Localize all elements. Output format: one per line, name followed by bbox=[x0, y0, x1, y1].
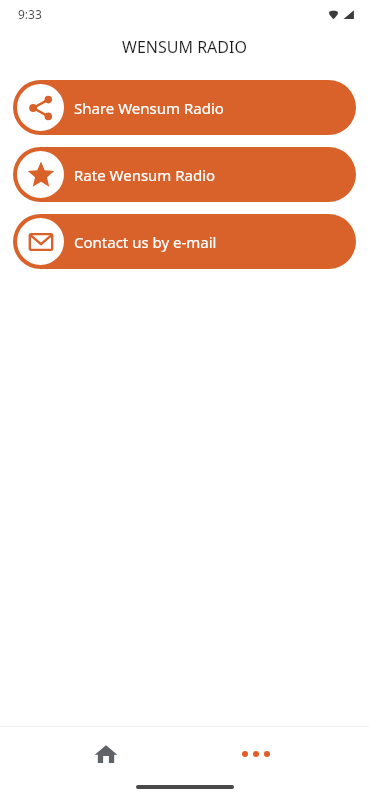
staticText: 9:33 bbox=[18, 6, 42, 22]
button[interactable]: Home bbox=[78, 726, 134, 782]
button[interactable]: Rate Wensum Radio bbox=[13, 147, 356, 202]
staticText: Share Wensum Radio bbox=[74, 98, 224, 118]
staticText: Rate Wensum Radio bbox=[74, 165, 216, 185]
button[interactable]: Share Wensum Radio bbox=[13, 80, 356, 135]
staticText: WENSUM RADIO bbox=[122, 36, 247, 58]
button[interactable]: Contact us by e-mail bbox=[13, 214, 356, 269]
staticText: Contact us by e-mail bbox=[74, 232, 217, 252]
button[interactable]: More options bbox=[228, 726, 284, 782]
